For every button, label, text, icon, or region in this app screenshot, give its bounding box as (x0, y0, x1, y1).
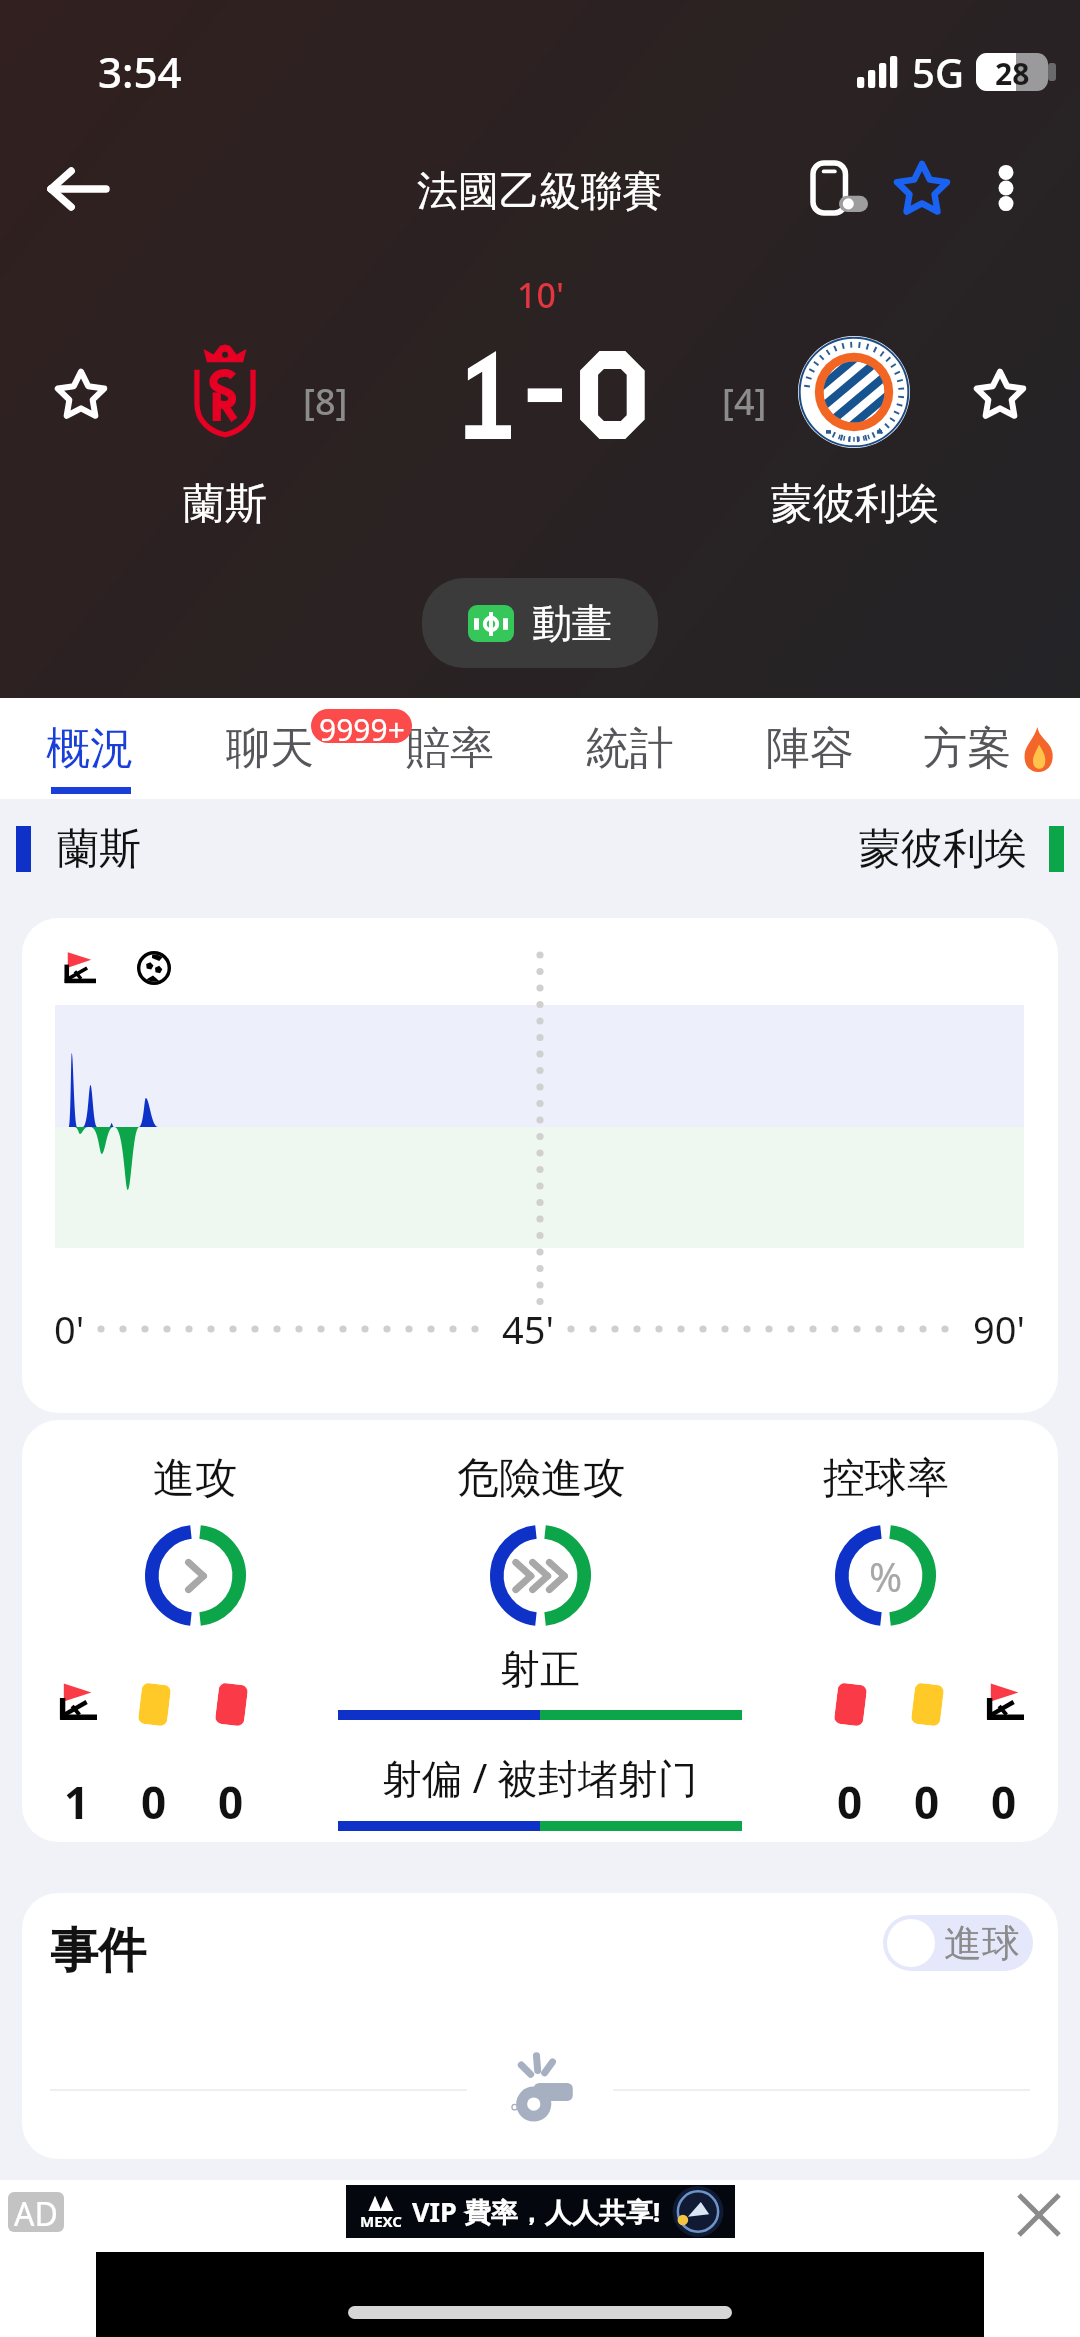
button[interactable]: 進球 (883, 1915, 1033, 1971)
button[interactable]: Favorite away team (955, 349, 1045, 439)
button[interactable]: Close ad (1014, 2190, 1064, 2240)
staticText: 進攻 (153, 1452, 237, 1505)
staticText: % (869, 1549, 903, 1603)
button[interactable] (22, 918, 1058, 1413)
staticText: 事件 (50, 1921, 146, 1981)
staticText: 1 (64, 1772, 90, 1832)
button[interactable] (22, 1893, 1058, 2159)
staticText: 動畫 (532, 598, 612, 648)
button[interactable]: MEXC (346, 2185, 735, 2238)
staticText: 概況 (46, 721, 134, 776)
staticText: 10' (517, 272, 564, 318)
button[interactable]: Phone notification (795, 142, 887, 234)
button[interactable]: More options (960, 142, 1052, 234)
staticText: 賠率 (406, 721, 494, 776)
staticText: 蘭斯 (57, 823, 141, 876)
staticText: 0 (218, 1772, 244, 1832)
staticText: 方案 (923, 721, 1011, 776)
button[interactable]: 方案 (900, 698, 1080, 798)
staticText: 聊天 (226, 721, 314, 776)
staticText: 3:54 (98, 43, 182, 100)
staticText: 陣容 (766, 721, 854, 776)
staticText: 0' (54, 1303, 85, 1355)
button[interactable]: Reims team (170, 333, 280, 443)
staticText: 蘭斯 (183, 478, 267, 531)
staticText: 射正 (500, 1644, 580, 1694)
staticText: 0 (141, 1772, 167, 1832)
staticText: 蒙彼利埃 (859, 823, 1027, 876)
staticText: 9999+ (319, 709, 405, 743)
button[interactable]: Favorite home team (36, 349, 126, 439)
staticText: 統計 (586, 721, 674, 776)
staticText: 進球 (944, 1919, 1020, 1967)
button[interactable]: 概況 (0, 698, 180, 798)
staticText: 0 (837, 1772, 863, 1832)
staticText: 28 (995, 53, 1030, 91)
staticText: 控球率 (823, 1452, 949, 1505)
staticText: 法國乙級聯賽 (417, 166, 663, 218)
button[interactable]: 動畫 (422, 578, 658, 668)
staticText: 90' (973, 1303, 1026, 1355)
button[interactable]: Montpellier team (798, 336, 910, 448)
button[interactable]: 陣容 (720, 698, 900, 798)
button[interactable] (22, 1420, 1058, 1842)
staticText: [8] (303, 377, 348, 426)
staticText: 射偏 / 被封堵射门 (382, 1750, 698, 1805)
staticText: 5G (912, 45, 964, 99)
staticText: 0 (991, 1772, 1017, 1832)
button[interactable]: 統計 (540, 698, 720, 798)
button[interactable]: 聊天 (180, 698, 360, 798)
staticText: 45' (502, 1303, 555, 1355)
button[interactable]: Favorite (876, 142, 968, 234)
staticText: 蒙彼利埃 (771, 478, 939, 531)
button[interactable]: 賠率 (360, 698, 540, 798)
staticText: 0 (914, 1772, 940, 1832)
staticText: VIP 費率，人人共享! (412, 2193, 661, 2230)
staticText: AD (14, 2192, 58, 2232)
button[interactable]: Back (30, 142, 124, 236)
staticText: [4] (722, 377, 767, 426)
staticText: 危險進攻 (457, 1452, 625, 1505)
staticText: MEXC (360, 2211, 402, 2231)
